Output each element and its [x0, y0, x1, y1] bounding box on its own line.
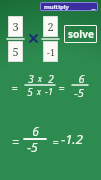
button[interactable]: solve	[64, 25, 97, 43]
staticText: =	[52, 134, 59, 149]
staticText: =	[11, 80, 18, 95]
staticText: -1	[45, 85, 53, 97]
button[interactable]: 2	[43, 16, 58, 37]
button[interactable]: 5	[8, 41, 23, 62]
button[interactable]: -1	[43, 41, 58, 62]
staticText: x	[37, 86, 41, 97]
staticText: 6	[78, 71, 85, 86]
staticText: 3	[28, 72, 34, 86]
button[interactable]: 3	[8, 16, 23, 37]
staticText: =	[58, 80, 65, 95]
other: Multiply	[29, 34, 38, 43]
staticText: 5	[27, 85, 33, 99]
staticText: 3	[12, 19, 19, 34]
staticText: 5	[12, 44, 19, 59]
staticText: 2	[47, 19, 54, 34]
staticText: -5	[74, 85, 84, 100]
staticText: -1	[47, 46, 55, 58]
staticText: multiply	[44, 3, 69, 11]
staticText: x	[38, 73, 42, 84]
staticText: 6	[32, 123, 39, 139]
staticText: 2	[48, 72, 54, 86]
button[interactable]: multiply	[40, 2, 98, 11]
staticText: =	[12, 134, 19, 150]
staticText: -1.2	[61, 130, 83, 148]
staticText: -5	[27, 139, 38, 155]
staticText: solve	[68, 27, 94, 41]
